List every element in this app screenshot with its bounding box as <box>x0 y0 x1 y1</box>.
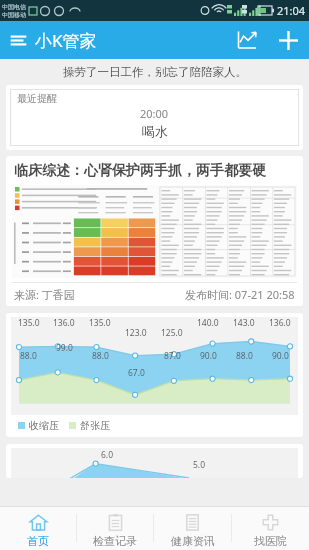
staticText: 6.0 <box>101 449 114 461</box>
staticText: 90.0 <box>200 350 217 362</box>
staticText: 88.0 <box>236 350 253 362</box>
staticText: 5.0 <box>193 459 206 471</box>
button[interactable]: 最近提醒 <box>6 85 303 150</box>
staticText: 125.0 <box>161 327 183 339</box>
staticText: 88.0 <box>20 350 37 362</box>
staticText: 发布时间: 07-21 20:58 <box>185 287 295 302</box>
staticText: 135.0 <box>18 317 40 329</box>
button[interactable]: 135.0 <box>6 313 303 437</box>
staticText: 123.0 <box>125 327 147 339</box>
staticText: 135.0 <box>89 317 111 329</box>
staticText: 来源: 丁香园 <box>14 287 75 302</box>
button[interactable]: 首页 <box>0 506 76 550</box>
staticText: 90.0 <box>272 350 289 362</box>
staticText: 140.0 <box>197 317 219 329</box>
button[interactable]: Trend chart <box>227 21 267 59</box>
staticText: 临床综述：心肾保护两手抓，两手都要硬 <box>14 162 266 180</box>
button[interactable]: Menu <box>0 25 103 56</box>
staticText: 收缩压 <box>29 419 59 432</box>
other: Menu <box>10 32 27 49</box>
staticText: 最近提醒 <box>17 92 57 105</box>
staticText: 136.0 <box>269 317 291 329</box>
staticText: 20:00 <box>140 106 169 121</box>
button[interactable]: 找医院 <box>232 506 309 550</box>
staticText: 88.0 <box>92 350 109 362</box>
button[interactable]: Add <box>267 21 309 59</box>
staticText: 喝水 <box>142 123 168 139</box>
staticText: 中国电信 <box>2 3 26 11</box>
button[interactable]: 6.0 <box>6 444 303 478</box>
button[interactable]: 检查记录 <box>77 506 153 550</box>
staticText: 小K管家 <box>35 29 97 52</box>
button[interactable]: 临床综述：心肾保护两手抓，两手都要硬 <box>6 156 303 306</box>
staticText: 找医院 <box>254 534 287 548</box>
staticText: 首页 <box>27 534 49 548</box>
staticText: 21:04 <box>277 3 306 18</box>
staticText: 中国移动 <box>2 11 26 19</box>
button[interactable]: 健康资讯 <box>154 506 231 550</box>
staticText: 舒张压 <box>80 419 110 432</box>
staticText: 操劳了一日工作，别忘了陪陪家人。 <box>63 65 247 79</box>
staticText: 99.0 <box>56 342 73 354</box>
staticText: 健康资讯 <box>171 534 215 548</box>
staticText: 检查记录 <box>93 534 137 548</box>
staticText: 143.0 <box>233 317 255 329</box>
staticText: 87.0 <box>164 350 181 362</box>
staticText: 136.0 <box>53 317 75 329</box>
staticText: 67.0 <box>128 367 145 379</box>
